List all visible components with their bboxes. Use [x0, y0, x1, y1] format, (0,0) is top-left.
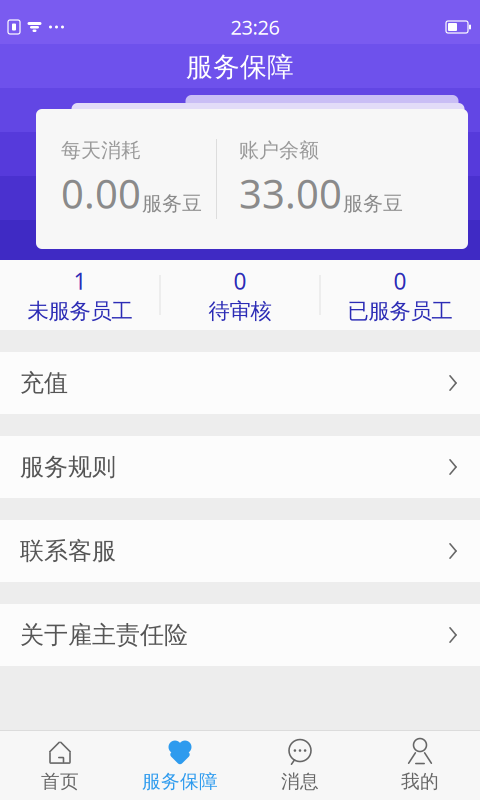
staticText: 已服务员工	[347, 298, 452, 324]
staticText: 关于雇主责任险	[20, 620, 188, 650]
staticText: 首页	[41, 770, 79, 793]
button[interactable]: 联系客服	[0, 520, 480, 582]
staticText: 每天消耗	[61, 138, 141, 163]
button[interactable]: 消息	[240, 731, 360, 800]
staticText: 待审核	[208, 298, 271, 324]
staticText: 服务保障	[186, 51, 294, 83]
staticText: 23:26	[230, 14, 279, 40]
button[interactable]: 服务规则	[0, 436, 480, 498]
staticText: 账户余额	[239, 138, 319, 163]
staticText: 我的	[401, 770, 439, 793]
staticText: 服务规则	[20, 452, 116, 482]
staticText: 服务豆	[142, 191, 202, 216]
staticText: 服务保障	[142, 770, 218, 793]
staticText: 消息	[281, 770, 319, 793]
button[interactable]: 我的	[360, 731, 480, 800]
staticText: 0.00	[61, 167, 141, 220]
button[interactable]: 充值	[0, 352, 480, 414]
staticText: 0	[233, 266, 246, 296]
staticText: 充值	[20, 368, 68, 398]
button[interactable]: 0	[160, 260, 319, 330]
button[interactable]: 关于雇主责任险	[0, 604, 480, 666]
button[interactable]: 0	[320, 260, 479, 330]
button[interactable]: 1	[0, 260, 159, 330]
staticText: 服务豆	[343, 191, 403, 216]
button[interactable]: 服务保障	[120, 731, 240, 800]
staticText: 0	[393, 266, 406, 296]
staticText: 33.00	[239, 167, 342, 220]
staticText: 联系客服	[20, 536, 116, 566]
staticText: 1	[73, 266, 86, 296]
staticText: 未服务员工	[27, 298, 132, 324]
button[interactable]: 首页	[0, 731, 120, 800]
